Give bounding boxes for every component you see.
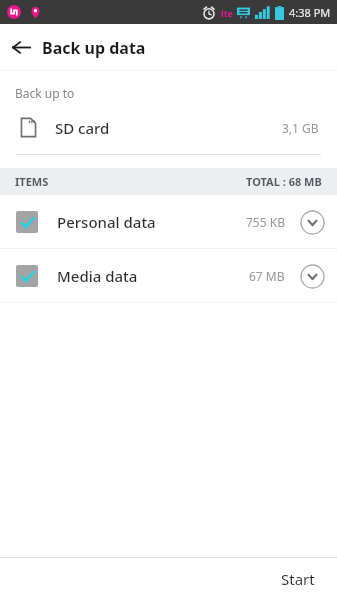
staticText: 3,1 GB xyxy=(282,120,319,136)
staticText: 67 MB xyxy=(249,268,285,284)
staticText: Back up to xyxy=(15,85,75,101)
button[interactable]: Toggle Media data xyxy=(16,265,38,287)
staticText: lte xyxy=(221,7,233,19)
staticText: Media data xyxy=(57,266,138,286)
button[interactable]: Toggle Media data xyxy=(0,249,337,302)
button[interactable]: Toggle Personal data xyxy=(16,211,38,233)
staticText: Back up data xyxy=(42,37,146,59)
button[interactable]: Start xyxy=(259,558,337,600)
staticText: Personal data xyxy=(57,212,156,232)
staticText: Start xyxy=(281,569,315,589)
button[interactable]: Back xyxy=(0,24,42,71)
button[interactable]: Expand Personal data xyxy=(297,207,327,237)
button[interactable]: SD card xyxy=(0,111,337,144)
button[interactable]: Expand Media data xyxy=(297,261,327,291)
staticText: 755 KB xyxy=(246,214,285,230)
staticText: ITEMS xyxy=(15,174,49,189)
staticText: 4:38 PM xyxy=(289,5,331,20)
staticText: TOTAL : 68 MB xyxy=(246,174,322,189)
button[interactable]: Toggle Personal data xyxy=(0,195,337,248)
staticText: SD card xyxy=(55,118,110,138)
